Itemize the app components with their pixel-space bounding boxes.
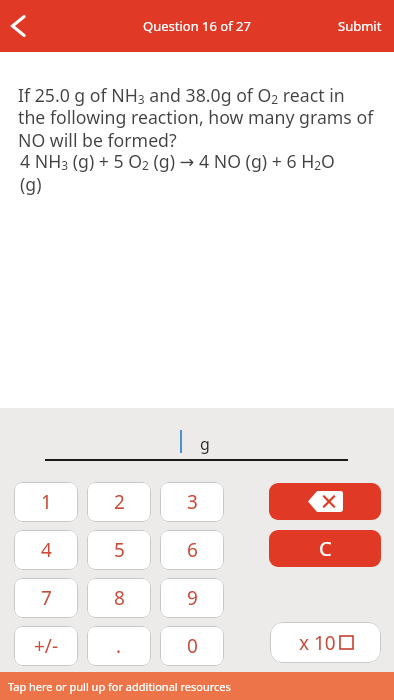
button[interactable]: 6 xyxy=(160,530,224,570)
button[interactable]: 5 xyxy=(87,530,151,570)
staticText: Tap here or pull up for additional resou… xyxy=(8,679,231,694)
button[interactable] xyxy=(0,0,40,52)
staticText: 9 xyxy=(187,585,198,611)
staticText: 0 xyxy=(187,633,198,659)
button[interactable]: 2 xyxy=(87,482,151,522)
button[interactable]: 9 xyxy=(160,578,224,618)
button[interactable]: C xyxy=(269,530,381,567)
staticText: x 10 xyxy=(299,630,336,656)
button[interactable]: Tap here or pull up for additional resou… xyxy=(0,672,394,700)
staticText: +/- xyxy=(34,633,59,659)
staticText: 6 xyxy=(187,537,198,563)
staticText: the following reaction, how many grams o… xyxy=(18,105,374,129)
button[interactable]: 0 xyxy=(160,626,224,666)
staticText: 3 xyxy=(187,489,198,515)
staticText: 7 xyxy=(41,585,52,611)
button[interactable]: 7 xyxy=(14,578,78,618)
staticText: NO will be formed? xyxy=(18,128,177,152)
staticText: 4 NH3 (g) + 5 O2 (g) → 4 NO (g) + 6 H2O xyxy=(20,149,335,174)
staticText: 5 xyxy=(114,537,125,563)
staticText: Submit xyxy=(338,17,382,35)
staticText: Question 16 of 27 xyxy=(143,17,251,35)
staticText: If 25.0 g of NH3 and 38.0g of O2 react i… xyxy=(18,83,345,108)
staticText: . xyxy=(116,633,122,659)
staticText: 8 xyxy=(114,585,125,611)
staticText: 4 xyxy=(41,537,52,563)
staticText: (g) xyxy=(20,172,42,196)
button[interactable]: 4 xyxy=(14,530,78,570)
button[interactable] xyxy=(269,483,381,520)
button[interactable]: 1 xyxy=(14,482,78,522)
button[interactable]: . xyxy=(87,626,151,666)
button[interactable]: Submit xyxy=(338,17,382,35)
staticText: C xyxy=(319,535,332,562)
button[interactable]: 3 xyxy=(160,482,224,522)
staticText: 2 xyxy=(114,489,125,515)
staticText: g xyxy=(200,433,210,455)
button[interactable]: +/- xyxy=(14,626,78,666)
staticText: 1 xyxy=(41,489,52,515)
button[interactable]: x 10 xyxy=(270,622,381,663)
button[interactable]: 8 xyxy=(87,578,151,618)
